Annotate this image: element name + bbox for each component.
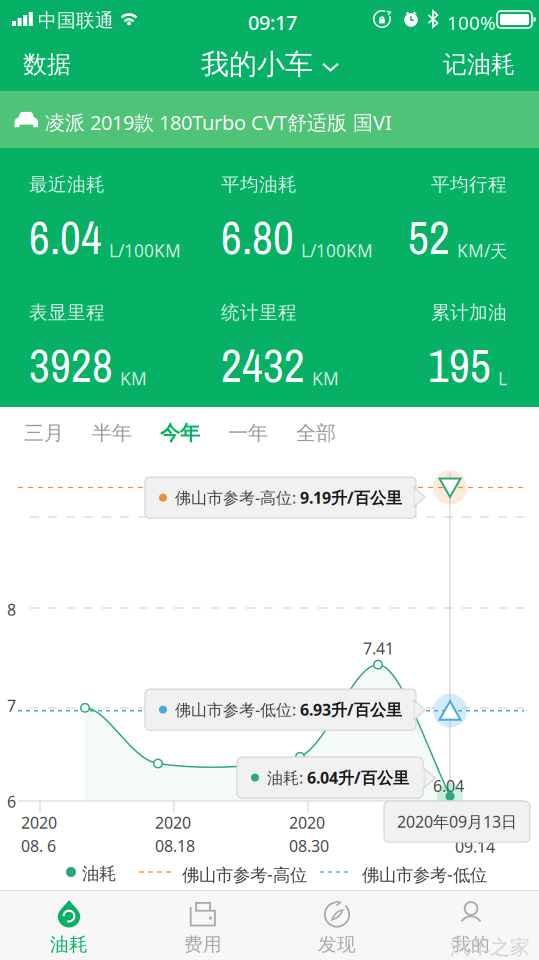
button[interactable]: 记油耗: [424, 38, 534, 91]
button[interactable]: 一年: [214, 407, 282, 459]
staticText: 2020: [155, 812, 191, 833]
staticText: 08.30: [289, 835, 329, 856]
staticText: 2020: [21, 812, 57, 833]
staticText: 油耗: [50, 933, 88, 956]
button[interactable]: 凌派 2019款 180Turbo CVT舒适版 国VI: [0, 91, 539, 148]
staticText: 平均油耗: [221, 173, 297, 196]
staticText: 195: [428, 335, 491, 396]
staticText: KM: [312, 367, 339, 390]
button[interactable]: 费用: [136, 890, 270, 960]
staticText: 3928: [29, 335, 113, 396]
staticText: 油耗:: [267, 767, 303, 788]
staticText: L: [498, 367, 507, 390]
staticText: 6.93升/百公里: [300, 699, 402, 720]
staticText: 最近油耗: [29, 173, 105, 196]
staticText: 费用: [184, 933, 222, 956]
staticText: KM: [120, 367, 147, 390]
staticText: 7.41: [363, 638, 394, 659]
staticText: 发现: [318, 933, 356, 956]
staticText: 6.04: [29, 207, 102, 268]
staticText: 08. 6: [21, 835, 56, 856]
staticText: 09:17: [248, 9, 297, 36]
staticText: L/100KM: [301, 239, 373, 262]
button[interactable]: 发现: [270, 890, 404, 960]
button[interactable]: 半年: [78, 407, 146, 459]
staticText: 中国联通: [38, 9, 114, 32]
staticText: 三月: [24, 421, 64, 445]
staticText: 9.19升/百公里: [300, 487, 402, 508]
staticText: 我的小车: [201, 47, 313, 82]
button[interactable]: 今年: [146, 407, 214, 459]
staticText: 我的: [452, 933, 490, 956]
staticText: 凌派 2019款 180Turbo CVT舒适版 国VI: [45, 109, 392, 136]
staticText: 全部: [296, 421, 336, 445]
staticText: 08.18: [155, 835, 195, 856]
staticText: 2020: [289, 812, 325, 833]
staticText: 100%: [447, 10, 496, 35]
staticText: 半年: [92, 421, 132, 445]
staticText: 7: [7, 695, 16, 716]
button[interactable]: 我的小车: [170, 38, 370, 91]
staticText: 佛山市参考-高位: [182, 863, 307, 886]
staticText: 6.04: [433, 775, 464, 796]
button[interactable]: 数据: [0, 38, 94, 91]
button[interactable]: 全部: [282, 407, 350, 459]
staticText: 佛山市参考-低位:: [175, 699, 296, 720]
staticText: 表显里程: [29, 301, 105, 324]
button[interactable]: 三月: [10, 407, 78, 459]
staticText: 2432: [221, 335, 305, 396]
staticText: 8: [7, 599, 16, 620]
staticText: L/100KM: [109, 239, 181, 262]
staticText: 6.04升/百公里: [307, 767, 409, 788]
staticText: 52: [408, 207, 450, 268]
staticText: 09.14: [455, 836, 495, 857]
staticText: 一年: [228, 421, 268, 445]
staticText: 记油耗: [443, 50, 515, 79]
button[interactable]: 油耗: [2, 890, 136, 960]
staticText: 6: [7, 791, 16, 812]
staticText: 2020年09月13日: [397, 811, 517, 832]
staticText: 汽车之家: [450, 935, 530, 960]
staticText: 统计里程: [221, 301, 297, 324]
staticText: KM/天: [457, 239, 507, 262]
button[interactable]: 我的: [404, 890, 538, 960]
staticText: 平均行程: [431, 173, 507, 196]
staticText: 累计加油: [431, 301, 507, 324]
staticText: 佛山市参考-高位:: [175, 487, 296, 508]
staticText: 6.80: [221, 207, 294, 268]
staticText: 数据: [23, 50, 71, 79]
staticText: 今年: [160, 421, 200, 445]
staticText: 油耗: [82, 863, 116, 884]
staticText: 佛山市参考-低位: [362, 863, 487, 886]
